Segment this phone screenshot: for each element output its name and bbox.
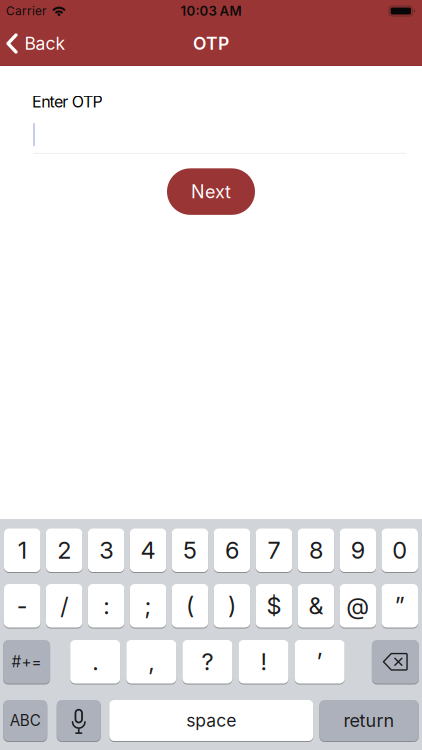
staticText: #+= <box>12 653 42 671</box>
button[interactable]: return <box>319 699 419 741</box>
staticText: ABC <box>10 711 41 730</box>
button[interactable]: Next <box>167 168 255 215</box>
button[interactable]: ( <box>172 583 208 628</box>
textField[interactable] <box>33 125 406 144</box>
staticText: space <box>186 710 236 731</box>
button[interactable]: 1 <box>4 528 40 572</box>
staticText: ” <box>395 591 405 620</box>
staticText: 4 <box>141 536 156 565</box>
button[interactable]: 7 <box>256 528 292 572</box>
staticText: Enter OTP <box>32 92 102 111</box>
staticText: 8 <box>309 536 323 565</box>
staticText: / <box>60 591 68 620</box>
button[interactable]: . <box>70 639 120 684</box>
button[interactable]: 5 <box>172 528 208 572</box>
staticText: Carrier <box>6 4 46 18</box>
button[interactable]: Dictation <box>57 699 101 741</box>
staticText: OTP <box>193 33 229 54</box>
button[interactable]: $ <box>256 583 292 628</box>
staticText: ) <box>228 591 236 620</box>
staticText: ( <box>186 591 194 620</box>
staticText: 7 <box>267 536 280 565</box>
button[interactable]: ? <box>182 639 232 684</box>
staticText: ’ <box>317 647 323 676</box>
button[interactable]: Back <box>6 33 65 54</box>
button[interactable]: ABC <box>3 699 47 741</box>
staticText: ! <box>260 647 266 676</box>
staticText: Back <box>24 33 65 54</box>
staticText: 6 <box>225 536 239 565</box>
button[interactable]: 6 <box>214 528 250 572</box>
staticText: return <box>344 710 395 731</box>
button[interactable]: ” <box>381 583 418 628</box>
button[interactable]: 3 <box>88 528 124 572</box>
button[interactable]: ; <box>130 583 166 628</box>
button[interactable]: 0 <box>381 528 418 572</box>
button[interactable]: - <box>4 583 40 628</box>
staticText: & <box>308 591 323 620</box>
button[interactable]: 4 <box>130 528 166 572</box>
button[interactable]: 2 <box>46 528 82 572</box>
staticText: 1 <box>18 536 27 565</box>
staticText: : <box>103 591 109 620</box>
staticText: 9 <box>351 536 365 565</box>
staticText: ? <box>201 647 213 676</box>
staticText: 2 <box>57 536 71 565</box>
staticText: 0 <box>392 536 407 565</box>
staticText: . <box>92 647 98 676</box>
staticText: 3 <box>99 536 113 565</box>
button[interactable]: 8 <box>298 528 334 572</box>
staticText: @ <box>346 591 369 620</box>
staticText: Next <box>191 181 231 202</box>
button[interactable]: 9 <box>340 528 376 572</box>
staticText: $ <box>266 591 281 620</box>
staticText: 10:03 AM <box>180 3 241 19</box>
button[interactable]: ) <box>214 583 250 628</box>
button[interactable]: ’ <box>295 639 345 684</box>
button[interactable]: @ <box>340 583 376 628</box>
staticText: , <box>148 647 154 676</box>
button[interactable]: Delete <box>372 639 419 684</box>
staticText: 5 <box>183 536 197 565</box>
button[interactable]: & <box>298 583 334 628</box>
button[interactable]: #+= <box>3 639 50 684</box>
staticText: ; <box>145 591 152 620</box>
button[interactable]: / <box>46 583 82 628</box>
button[interactable]: ! <box>238 639 288 684</box>
staticText: - <box>17 591 28 620</box>
button[interactable]: space <box>109 699 313 741</box>
button[interactable]: , <box>126 639 176 684</box>
button[interactable]: : <box>88 583 124 628</box>
